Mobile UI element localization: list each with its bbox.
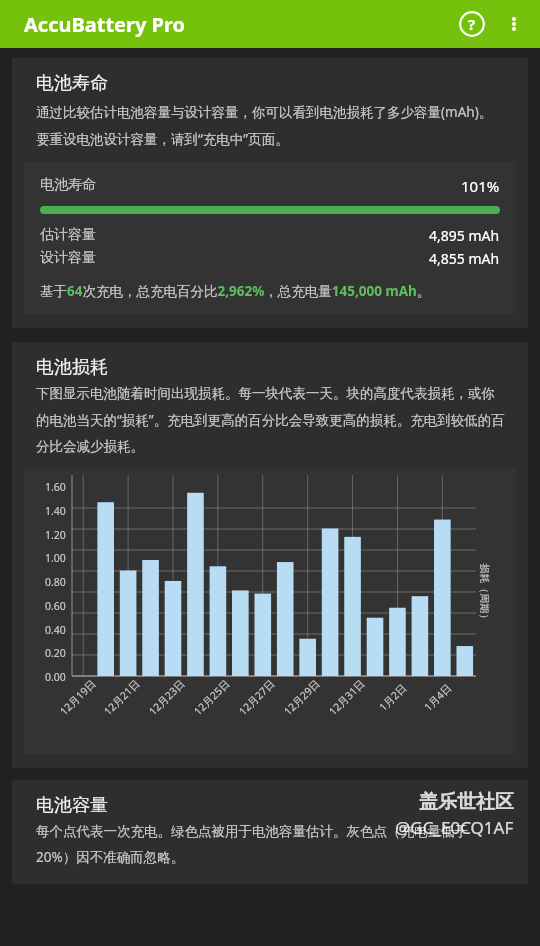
button[interactable]: More options — [494, 4, 534, 44]
staticText: 电池容量 — [36, 794, 108, 817]
staticText: 12月31日 — [326, 676, 368, 718]
staticText: AccuBattery Pro — [24, 11, 186, 38]
staticText: 12月23日 — [146, 676, 188, 718]
staticText: 基于64次充电，总充电百分比2,962%，总充电量145,000 mAh。 — [40, 282, 431, 300]
staticText: 电池寿命 — [40, 176, 96, 194]
staticText: 101% — [461, 176, 500, 196]
staticText: 电池寿命 — [36, 72, 108, 95]
staticText: 1.00 — [45, 551, 66, 565]
staticText: 12月21日 — [101, 676, 143, 718]
staticText: 12月29日 — [281, 676, 323, 718]
staticText: 通过比较估计电池容量与设计容量，你可以看到电池损耗了多少容量(mAh)。 要重设… — [36, 103, 506, 148]
staticText: 损耗（周期） — [477, 563, 490, 623]
button[interactable]: Help — [450, 2, 494, 46]
staticText: 0.00 — [45, 670, 66, 684]
staticText: 估计容量 — [40, 226, 96, 244]
staticText: 4,895 mAh — [429, 226, 500, 245]
staticText: 1.20 — [45, 528, 66, 542]
staticText: 4,855 mAh — [429, 249, 500, 268]
button[interactable]: 1.60 — [24, 469, 516, 754]
staticText: 每个点代表一次充电。绿色点被用于电池容量估计。灰色点（充电量低于20%）因不准确… — [36, 823, 506, 866]
staticText: 设计容量 — [40, 249, 96, 267]
staticText: 0.80 — [45, 575, 66, 589]
staticText: ? — [468, 14, 476, 34]
staticText: 盖乐世社区 — [419, 790, 514, 814]
staticText: 1.40 — [45, 504, 66, 518]
staticText: 1月4日 — [421, 680, 455, 714]
staticText: 12月27日 — [236, 676, 278, 718]
staticText: 0.60 — [45, 599, 66, 613]
staticText: 1月2日 — [376, 680, 410, 714]
staticText: 12月19日 — [57, 676, 99, 718]
staticText: 电池损耗 — [36, 356, 108, 379]
staticText: 12月25日 — [191, 676, 233, 718]
staticText: @GC_E0CQ1AF — [395, 816, 514, 839]
staticText: 0.20 — [45, 646, 66, 660]
staticText: 1.60 — [45, 480, 66, 494]
staticText: 0.40 — [45, 623, 66, 637]
staticText: 下图显示电池随着时间出现损耗。每一块代表一天。块的高度代表损耗，或你的电池当天的… — [36, 385, 506, 455]
button[interactable]: 电池寿命 — [24, 162, 516, 314]
